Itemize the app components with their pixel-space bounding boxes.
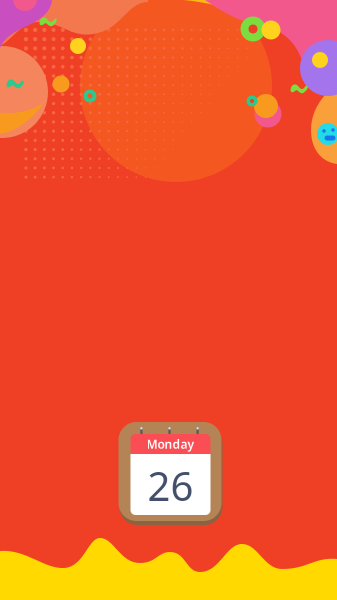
staticText: 26: [147, 459, 193, 512]
button[interactable]: Calendar: [118, 422, 222, 525]
staticText: Monday: [146, 436, 194, 452]
